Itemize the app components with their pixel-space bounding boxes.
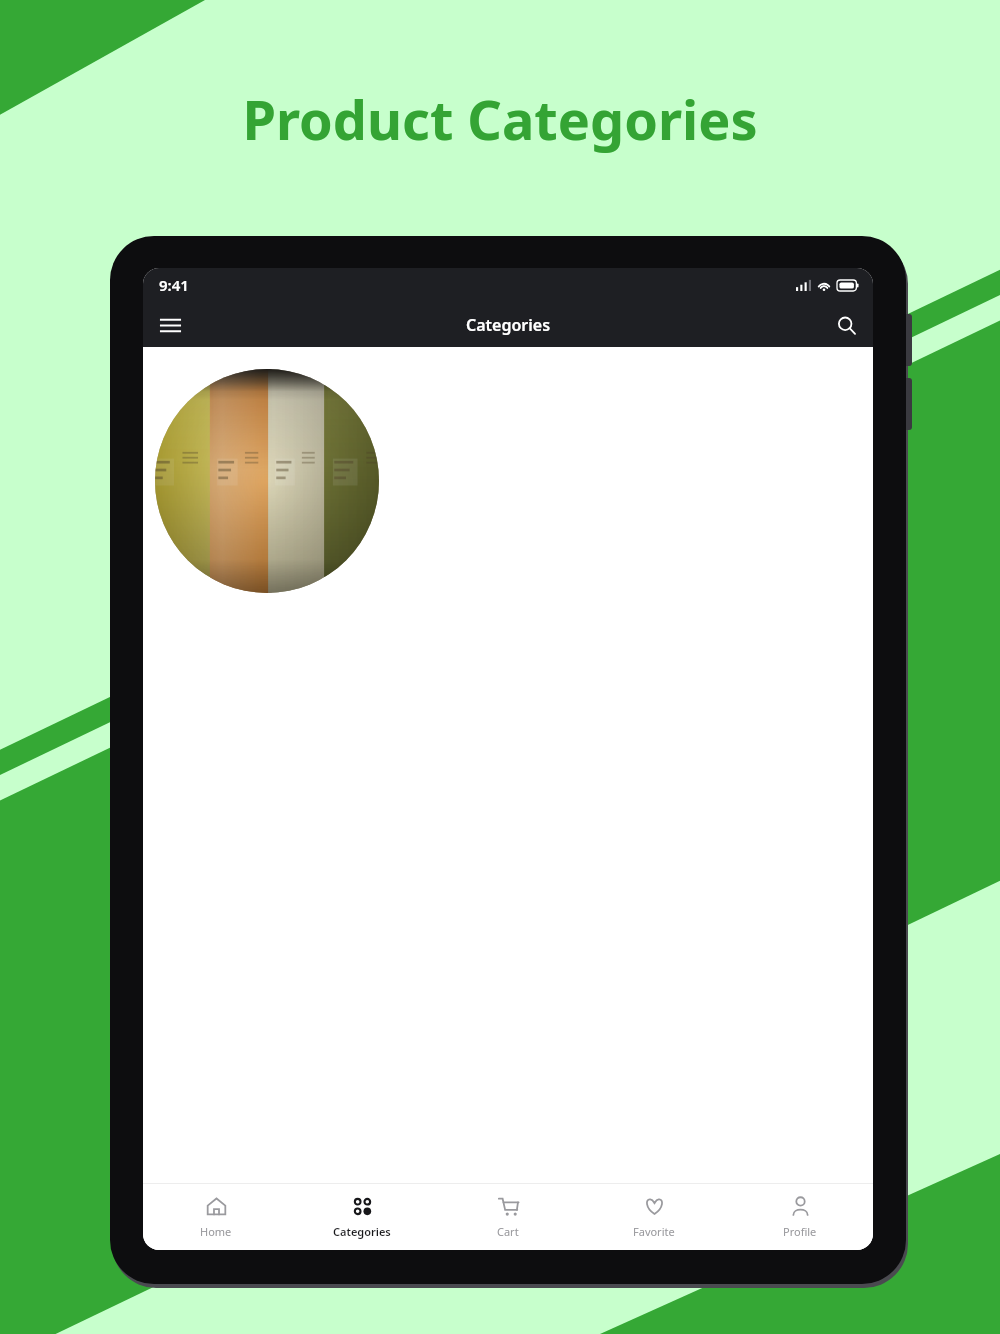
staticText: 9:41 [159, 275, 189, 295]
button[interactable]: Favorite [581, 1184, 727, 1250]
button[interactable]: Menu [149, 304, 191, 346]
staticText: Product Categories [242, 82, 758, 156]
button[interactable]: Categories [289, 1184, 435, 1250]
staticText: Favorite [633, 1224, 675, 1239]
button[interactable] [155, 369, 379, 593]
staticText: Cart [497, 1224, 519, 1239]
button[interactable]: Search [825, 304, 867, 346]
button[interactable]: Profile [727, 1184, 873, 1250]
staticText: Categories [466, 314, 551, 336]
staticText: Home [200, 1224, 232, 1239]
button[interactable]: Home [143, 1184, 289, 1250]
staticText: Profile [783, 1224, 817, 1239]
staticText: Categories [333, 1224, 391, 1239]
button[interactable]: Cart [435, 1184, 581, 1250]
